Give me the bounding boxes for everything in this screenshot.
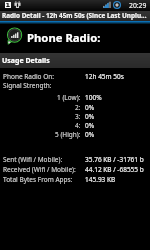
- staticText: 44.12 KB / -68555 b: [85, 165, 144, 174]
- staticText: 100%: [85, 93, 102, 102]
- staticText: 2:: [75, 103, 81, 112]
- staticText: 4:: [75, 121, 81, 130]
- staticText: Phone Radio:: [27, 30, 101, 45]
- staticText: Total Bytes From Apps:: [3, 175, 73, 184]
- staticText: Radio Detail - 12h 45m 50s (Since Last U…: [2, 11, 147, 20]
- other: Phone radio signal: [4, 27, 24, 47]
- staticText: 0%: [85, 130, 95, 139]
- staticText: 0%: [85, 121, 95, 130]
- staticText: 3:: [75, 112, 81, 121]
- staticText: 145.93 KB: [85, 175, 116, 184]
- staticText: 35.76 KB / -31761 b: [85, 155, 144, 164]
- staticText: Usage Details: [2, 56, 50, 66]
- staticText: 12h 45m 50s: [85, 72, 124, 81]
- staticText: Received (Wifi / Mobile):: [3, 165, 76, 174]
- staticText: Sent (Wifi / Mobile):: [3, 155, 63, 164]
- staticText: 5 (High):: [55, 130, 81, 139]
- staticText: 1 (Low):: [57, 93, 81, 102]
- staticText: 0%: [85, 103, 95, 112]
- staticText: 0%: [85, 112, 95, 121]
- staticText: 20:29: [129, 1, 147, 10]
- staticText: Phone Radio On:: [3, 72, 55, 81]
- staticText: Signal Strength:: [3, 81, 52, 90]
